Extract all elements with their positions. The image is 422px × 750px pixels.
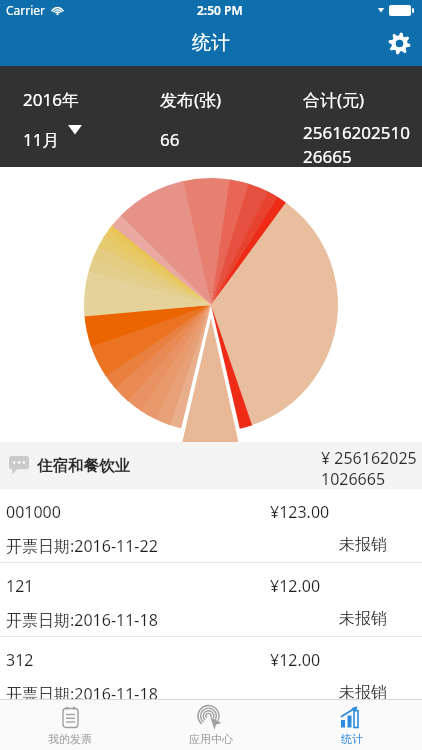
staticText: 66 (160, 128, 180, 151)
staticText: ¥12.00 (270, 575, 321, 597)
staticText: 未报销 (339, 683, 387, 699)
button[interactable]: 住宿和餐饮业 (0, 442, 422, 489)
staticText: 开票日期:2016-11-18 (6, 683, 158, 699)
staticText: 统计 (192, 31, 230, 55)
staticText: ¥12.00 (270, 649, 321, 671)
staticText: 应用中心 (189, 732, 233, 746)
staticText: 001000 (6, 501, 61, 523)
staticText: 发布(张) (160, 88, 222, 111)
button[interactable]: 001000 (0, 489, 422, 563)
button[interactable]: 应用中心 (140, 700, 281, 750)
staticText: 统计 (341, 732, 363, 746)
button[interactable]: 统计 (281, 700, 422, 750)
button[interactable]: 121 (0, 563, 422, 637)
staticText: 合计(元) (303, 88, 365, 111)
staticText: 开票日期:2016-11-22 (6, 535, 158, 557)
staticText: 11月 (23, 128, 60, 151)
staticText: 121 (6, 575, 34, 597)
staticText: 312 (6, 649, 34, 671)
staticText: 25616202510 26665 (303, 121, 410, 168)
staticText: 2:50 PM (197, 2, 243, 18)
staticText: 开票日期:2016-11-18 (6, 609, 158, 631)
button[interactable]: 312 (0, 637, 422, 699)
staticText: 未报销 (339, 535, 387, 555)
staticText: ¥123.00 (270, 501, 330, 523)
button[interactable]: Settings (376, 20, 422, 66)
staticText: 住宿和餐饮业 (37, 456, 130, 476)
staticText: ¥ 256162025 1026665 (321, 447, 417, 490)
staticText: 未报销 (339, 609, 387, 629)
staticText: 我的发票 (48, 732, 92, 746)
staticText: 2016年 (23, 88, 79, 111)
button[interactable]: 我的发票 (0, 700, 140, 750)
staticText: Carrier (6, 2, 46, 18)
